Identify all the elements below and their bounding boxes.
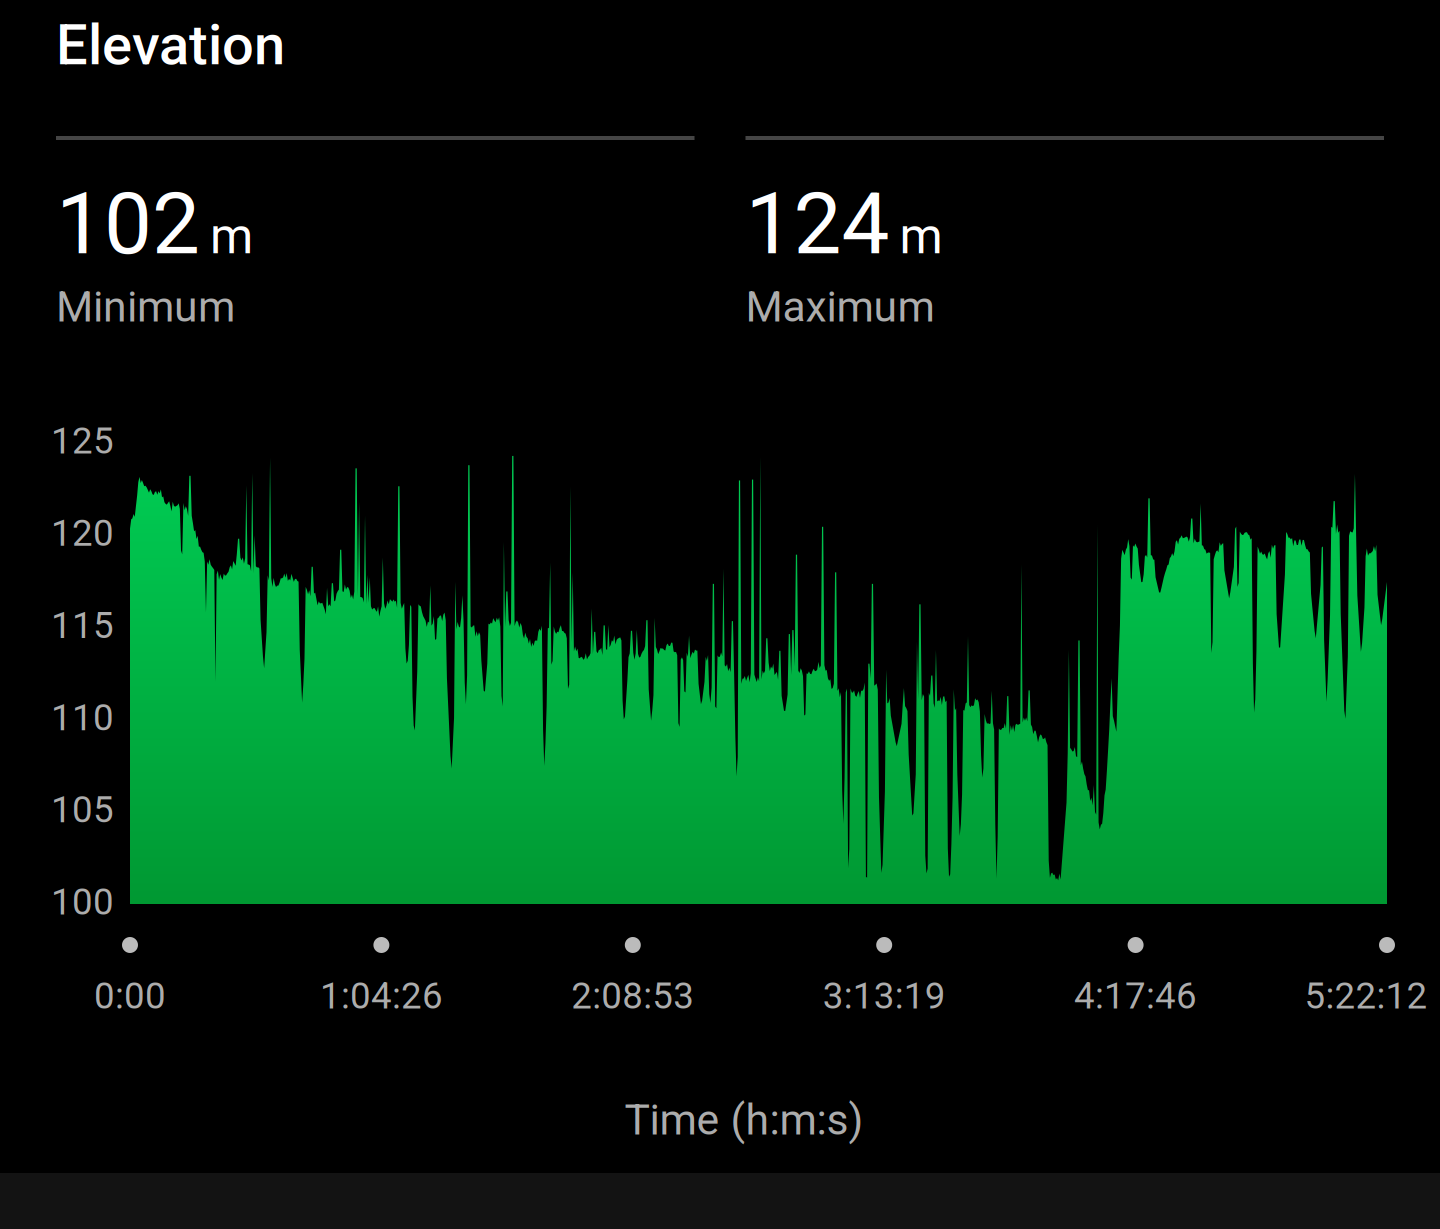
staticText: 110 — [51, 696, 114, 739]
staticText: 115 — [51, 604, 114, 647]
staticText: 120 — [51, 512, 114, 555]
staticText: 5:22:12 — [1304, 974, 1427, 1017]
staticText: 1:04:26 — [320, 974, 443, 1017]
staticText: 3:13:19 — [823, 974, 946, 1017]
staticText: 102 — [56, 174, 200, 274]
staticText: 124 — [745, 174, 889, 274]
staticText: m — [210, 207, 253, 265]
staticText: 100 — [51, 880, 114, 923]
staticText: 0:00 — [94, 974, 166, 1017]
staticText: 4:17:46 — [1074, 974, 1197, 1017]
staticText: m — [899, 207, 942, 265]
button[interactable]: 124 — [745, 136, 1384, 332]
button[interactable]: 102 — [56, 136, 694, 332]
staticText: 105 — [51, 788, 114, 831]
staticText: Minimum — [56, 282, 235, 332]
staticText: Elevation — [56, 12, 285, 78]
staticText: 125 — [51, 419, 114, 462]
staticText: Maximum — [745, 282, 934, 332]
staticText: 2:08:53 — [571, 974, 694, 1017]
staticText: Time (h:m:s) — [624, 1095, 863, 1145]
